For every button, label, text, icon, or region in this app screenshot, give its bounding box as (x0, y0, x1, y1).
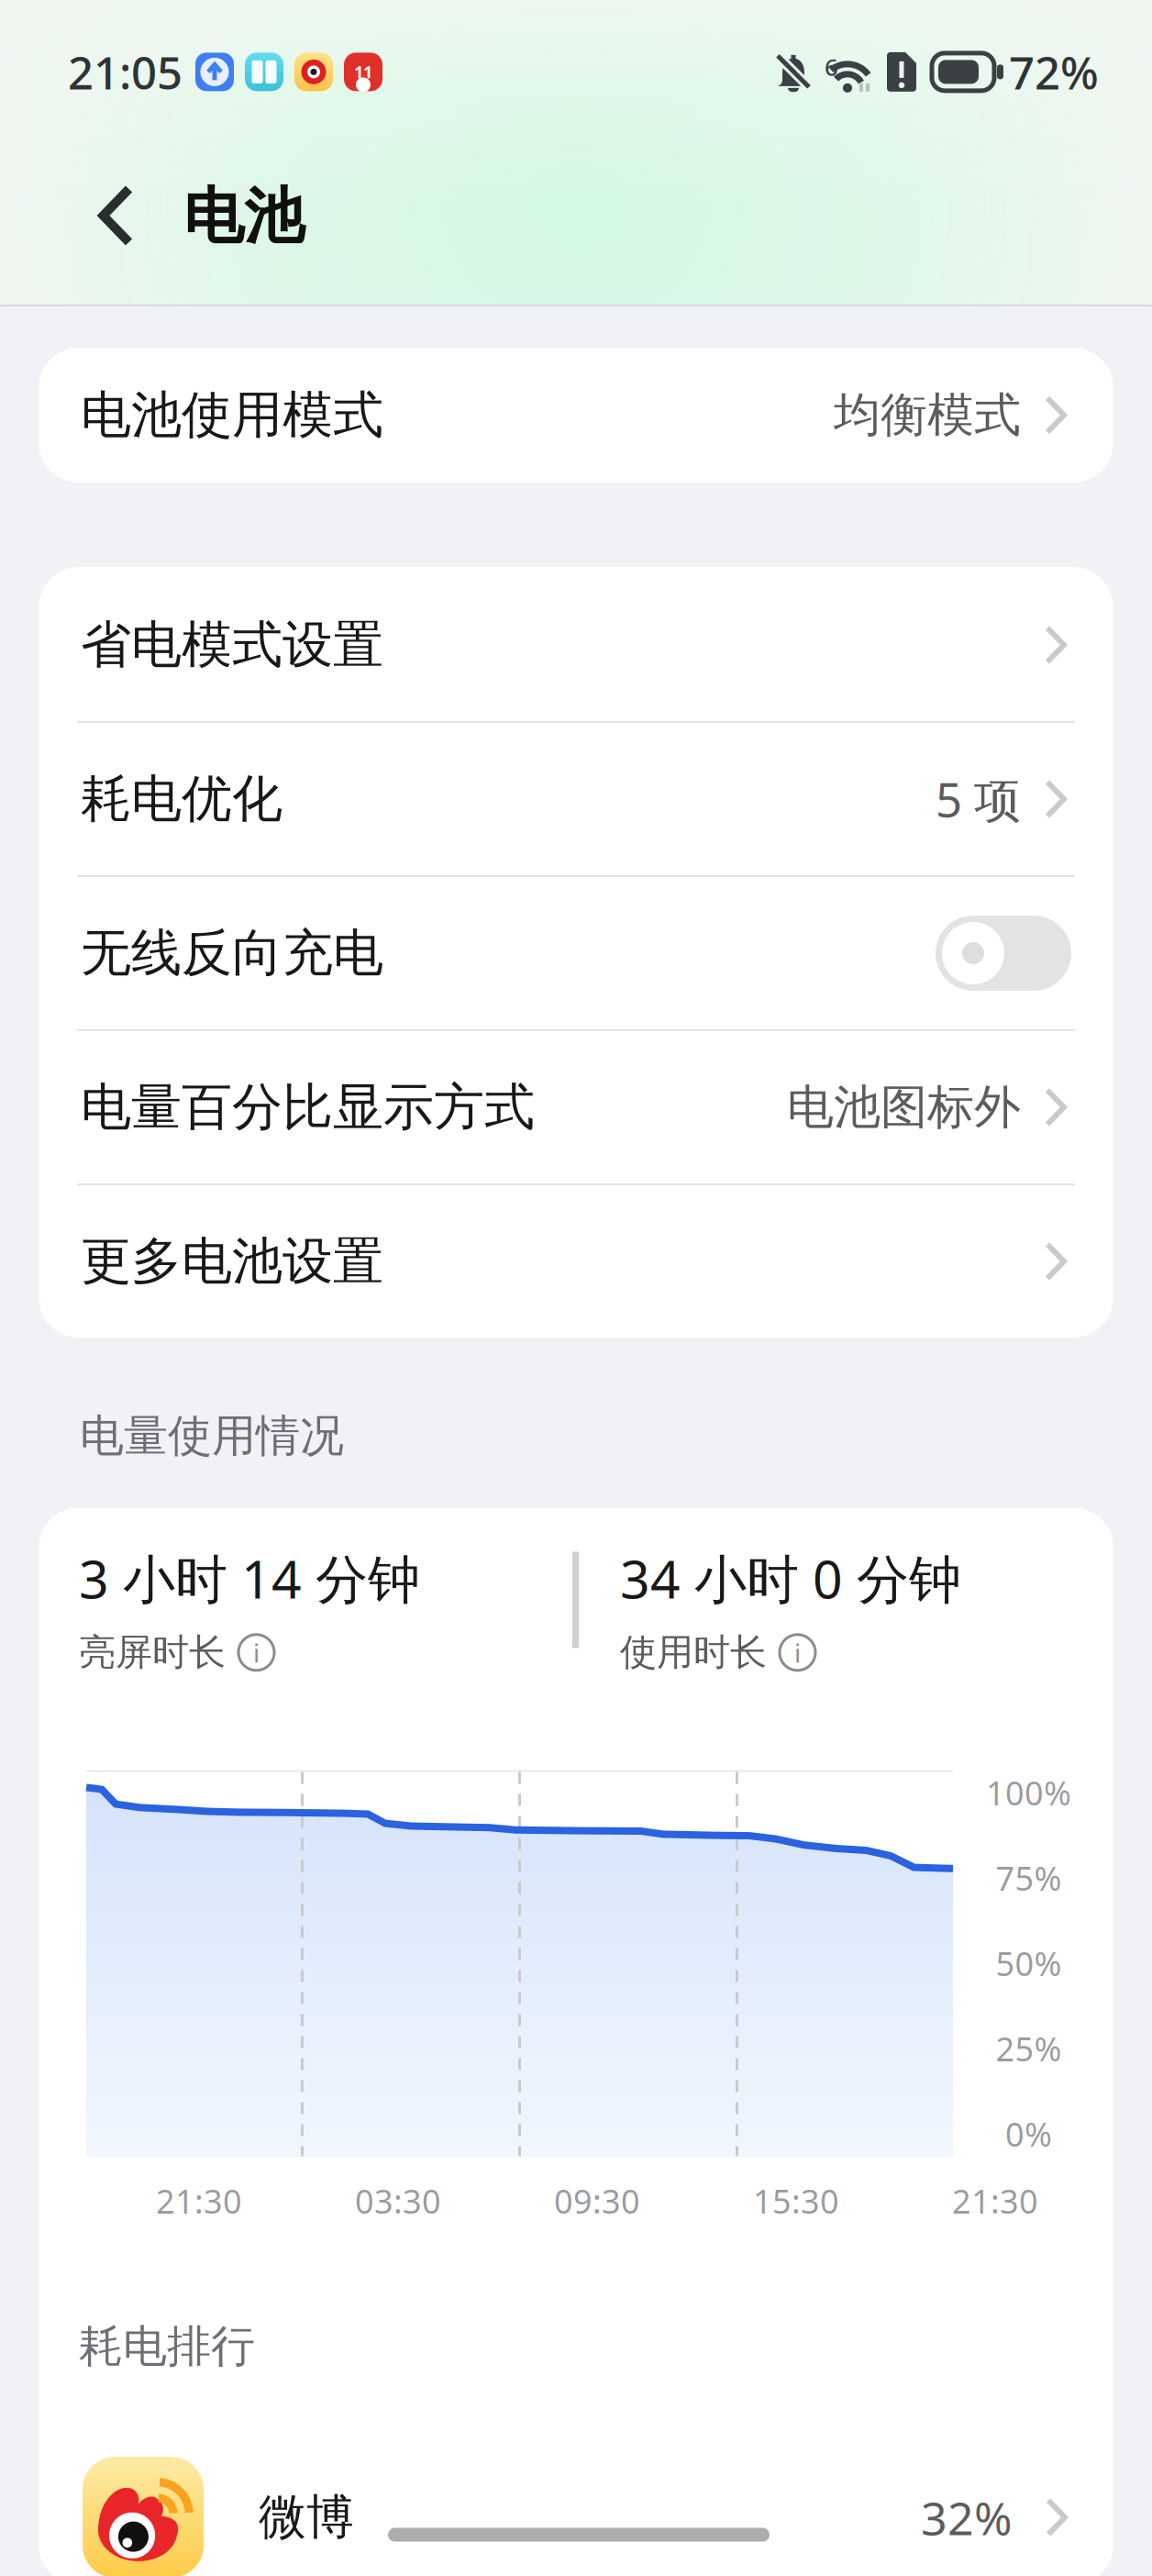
staticText: 5 项 (936, 767, 1021, 831)
staticText: 无线反向充电 (81, 921, 383, 985)
staticText: 电量百分比显示方式 (81, 1076, 535, 1139)
button[interactable]: 无线反向充电 (39, 877, 1113, 1029)
staticText: 6 (825, 50, 838, 83)
staticText: 25% (996, 2026, 1062, 2071)
staticText: 72% (1009, 41, 1099, 102)
staticText: 电池 (183, 178, 305, 255)
staticText: 微博 (259, 2487, 354, 2547)
staticText: 耗电排行 (79, 2319, 255, 2374)
button[interactable]: 省电模式设置 (39, 569, 1113, 721)
button[interactable]: 微博 (39, 2457, 1113, 2576)
staticText: 21:30 (952, 2178, 1038, 2223)
button[interactable]: 电池使用模式 (39, 348, 1113, 483)
button[interactable]: 电量百分比显示方式 (39, 1031, 1113, 1183)
staticText: 21:05 (68, 41, 183, 102)
staticText: 3 小时 14 分钟 (79, 1543, 420, 1614)
staticText: 50% (996, 1941, 1062, 1986)
button[interactable]: 更多电池设置 (39, 1185, 1113, 1338)
staticText: 100% (986, 1770, 1071, 1815)
staticText: 09:30 (554, 2178, 640, 2223)
staticText: i (253, 1635, 260, 1670)
staticText: 均衡模式 (834, 386, 1021, 445)
staticText: 75% (996, 1855, 1062, 1900)
staticText: 15:30 (753, 2178, 839, 2223)
staticText: 32% (921, 2486, 1013, 2548)
button[interactable]: Back (70, 186, 161, 247)
staticText: 03:30 (355, 2178, 441, 2223)
staticText: 21:30 (156, 2178, 242, 2223)
staticText: 11 (354, 61, 372, 83)
staticText: 电池使用模式 (81, 383, 383, 447)
staticText: i (794, 1635, 801, 1670)
staticText: 电量使用情况 (80, 1408, 344, 1464)
staticText: 亮屏时长 (79, 1629, 226, 1676)
staticText: 耗电优化 (81, 767, 282, 831)
staticText: 电池图标外 (787, 1078, 1021, 1137)
staticText: 省电模式设置 (81, 613, 383, 677)
button[interactable]: 耗电优化 (39, 723, 1113, 875)
staticText: 34 小时 0 分钟 (620, 1543, 961, 1614)
staticText: 使用时长 (620, 1629, 767, 1676)
staticText: 0% (1005, 2111, 1052, 2156)
staticText: 更多电池设置 (81, 1230, 383, 1293)
